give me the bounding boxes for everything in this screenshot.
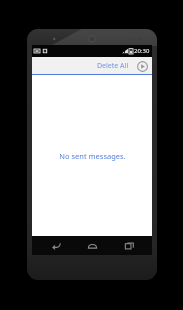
button[interactable]: Recent apps bbox=[116, 236, 142, 255]
staticText: No sent messages. bbox=[59, 151, 126, 161]
staticText: 20:30 bbox=[134, 47, 150, 55]
button[interactable]: Back bbox=[43, 236, 69, 255]
button[interactable]: Send bbox=[135, 59, 149, 73]
button[interactable]: Delete All bbox=[94, 59, 132, 73]
staticText: Delete All bbox=[97, 61, 129, 71]
button[interactable]: Home bbox=[79, 236, 105, 255]
